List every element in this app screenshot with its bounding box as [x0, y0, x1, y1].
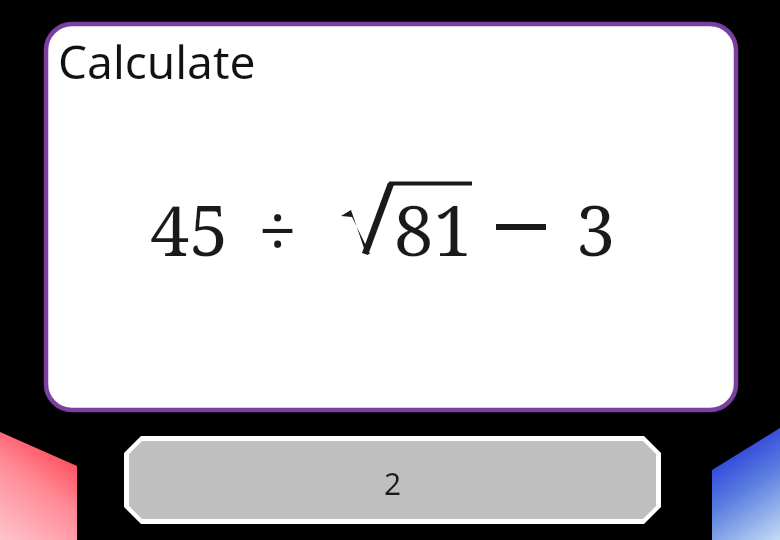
button[interactable]: Answer 2 — [0, 0, 780, 540]
staticText: 45 — [150, 181, 229, 276]
button[interactable] — [0, 0, 780, 540]
staticText: 3 — [576, 181, 616, 276]
staticText: Calculate — [58, 30, 256, 93]
staticText: 81 — [394, 181, 473, 276]
staticText: 2 — [129, 463, 656, 503]
staticText: ÷ — [258, 181, 298, 276]
